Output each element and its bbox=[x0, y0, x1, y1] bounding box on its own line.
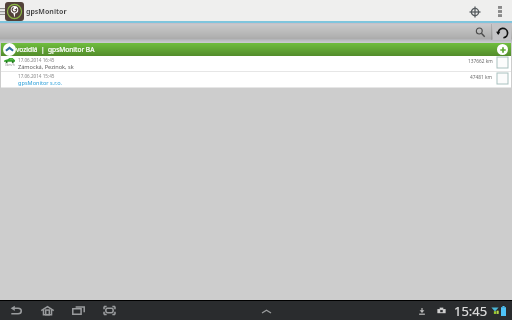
button[interactable]: Home bbox=[36, 301, 58, 320]
button[interactable]: gpsMonitor app icon bbox=[5, 2, 24, 21]
button[interactable]: Add vehicle bbox=[497, 44, 508, 55]
staticText: 0km/h bbox=[5, 63, 15, 67]
button[interactable]: Locate on map bbox=[464, 1, 486, 22]
button[interactable]: Show navigation bbox=[258, 303, 274, 319]
button[interactable]: 0km/h bbox=[1, 56, 511, 71]
button[interactable]: Back bbox=[5, 301, 27, 320]
button[interactable]: Select vehicle bbox=[497, 73, 508, 84]
staticText: gpsMonitor bbox=[26, 7, 67, 17]
staticText: 47481 km bbox=[470, 74, 493, 81]
staticText: 17.06.2014 16:45 bbox=[18, 57, 55, 63]
button[interactable]: Refresh bbox=[493, 24, 511, 40]
staticText: 15:45 bbox=[454, 302, 488, 320]
button[interactable]: Open navigation drawer bbox=[0, 1, 5, 22]
button[interactable]: Recent apps bbox=[67, 301, 89, 320]
button[interactable]: Select vehicle bbox=[497, 57, 508, 68]
staticText: 17.06.2014 15:45 bbox=[18, 73, 55, 79]
staticText: 137662 km bbox=[468, 58, 493, 65]
button[interactable]: Collapse group bbox=[3, 43, 16, 56]
button[interactable]: Collapse group bbox=[1, 43, 511, 56]
button[interactable]: More options bbox=[492, 1, 507, 22]
staticText: Zámocká, Pezinok, sk bbox=[18, 63, 74, 71]
button[interactable]: Screenshot bbox=[98, 301, 120, 320]
button[interactable]: Search bbox=[469, 24, 491, 40]
staticText: gpsMonitor s.r.o. bbox=[18, 79, 63, 87]
button[interactable]: 17.06.2014 15:45 bbox=[1, 72, 511, 87]
staticText: vozidlá | gpsMonitor BA bbox=[16, 45, 95, 54]
